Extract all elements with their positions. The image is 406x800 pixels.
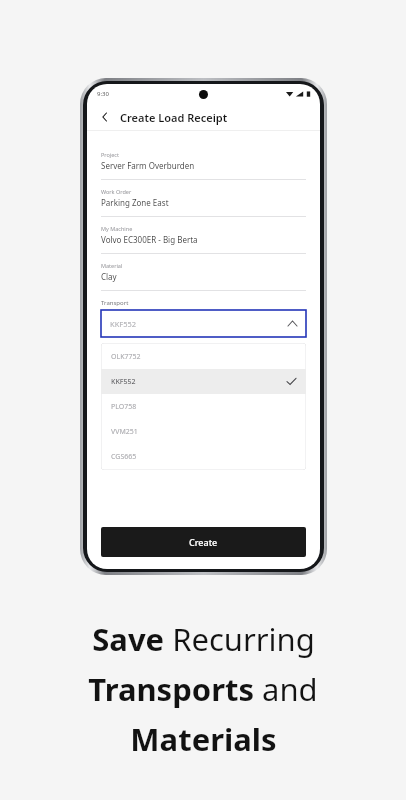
staticText: Server Farm Overburden xyxy=(101,160,195,171)
staticText: Project xyxy=(101,151,119,158)
staticText: Volvo EC300ER - Big Berta xyxy=(101,234,198,245)
staticText: Material xyxy=(101,262,123,269)
button[interactable]: PLO758 xyxy=(101,394,306,419)
staticText: VVM251 xyxy=(111,427,138,437)
staticText: OLK7752 xyxy=(111,352,141,362)
staticText: 9:30 xyxy=(97,90,109,98)
staticText: Materials xyxy=(130,718,277,760)
button[interactable]: CGS665 xyxy=(101,444,306,469)
staticText: Save Recurring xyxy=(92,618,315,660)
button[interactable]: VVM251 xyxy=(101,419,306,444)
staticText: KKF552 xyxy=(110,319,137,329)
button[interactable]: OLK7752 xyxy=(101,344,306,369)
staticText: Transports and xyxy=(88,668,318,710)
button[interactable]: Create xyxy=(101,527,306,557)
staticText: Transport xyxy=(101,299,129,307)
staticText: Parking Zone East xyxy=(101,197,169,208)
staticText: Create Load Receipt xyxy=(120,110,228,125)
staticText: My Machine xyxy=(101,225,133,232)
button[interactable]: KKF552 xyxy=(101,310,306,337)
staticText: PLO758 xyxy=(111,402,137,412)
staticText: Work Order xyxy=(101,188,132,195)
staticText: CGS665 xyxy=(111,452,137,462)
button[interactable]: KKF552 xyxy=(101,369,306,394)
staticText: KKF552 xyxy=(111,377,136,387)
staticText: Clay xyxy=(101,271,117,282)
staticText: Create xyxy=(189,536,218,548)
other: Collapse xyxy=(288,321,297,326)
button[interactable]: Back xyxy=(96,108,114,126)
